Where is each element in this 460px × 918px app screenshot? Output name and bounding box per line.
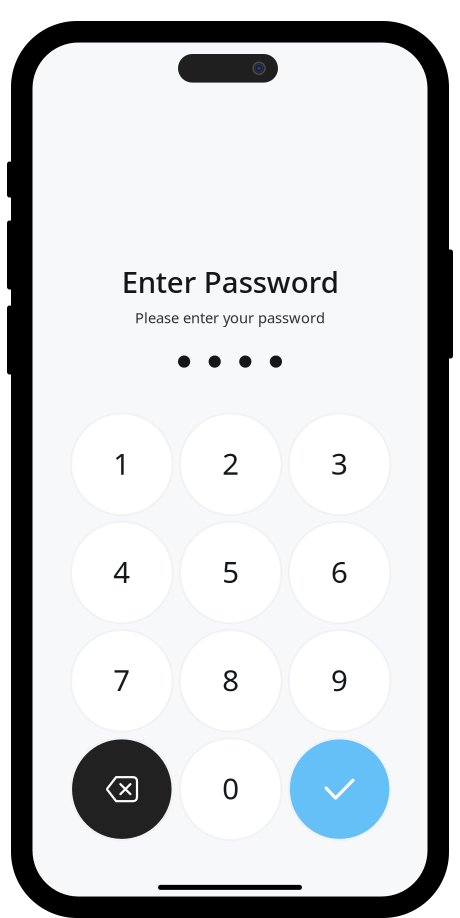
staticText: Please enter your password bbox=[135, 308, 325, 327]
button[interactable]: 7 bbox=[70, 629, 173, 733]
button[interactable]: 5 bbox=[179, 521, 282, 624]
staticText: Enter Password bbox=[122, 262, 339, 301]
staticText: 2 bbox=[222, 444, 239, 483]
button[interactable]: 8 bbox=[179, 629, 282, 733]
staticText: 4 bbox=[113, 552, 130, 591]
staticText: 1 bbox=[113, 444, 130, 483]
staticText: 7 bbox=[113, 660, 130, 699]
staticText: 3 bbox=[331, 444, 348, 483]
staticText: 5 bbox=[222, 552, 239, 591]
staticText: 6 bbox=[331, 552, 348, 591]
button[interactable]: Delete bbox=[70, 737, 173, 841]
staticText: 0 bbox=[222, 769, 239, 808]
button[interactable]: 2 bbox=[179, 412, 282, 516]
button[interactable]: Confirm bbox=[288, 737, 391, 841]
button[interactable]: 9 bbox=[288, 629, 391, 733]
button[interactable]: 0 bbox=[179, 737, 282, 841]
button[interactable]: 6 bbox=[288, 521, 391, 624]
staticText: 9 bbox=[331, 660, 348, 699]
button[interactable]: 1 bbox=[70, 412, 173, 516]
button[interactable]: 3 bbox=[288, 412, 391, 516]
button[interactable]: 4 bbox=[70, 521, 173, 624]
staticText: 8 bbox=[222, 660, 239, 699]
